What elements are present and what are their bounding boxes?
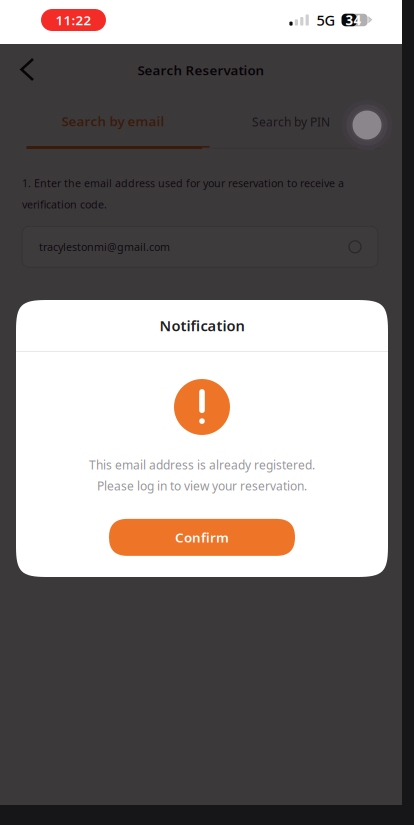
button[interactable]: Back bbox=[0, 44, 52, 96]
staticText: Please log in to view your reservation. bbox=[97, 478, 307, 494]
staticText: tracylestonmi@gmail.com bbox=[39, 240, 170, 254]
staticText: Notification bbox=[159, 316, 244, 335]
staticText: 34 bbox=[346, 11, 362, 29]
staticText: Search by PIN bbox=[252, 114, 330, 130]
staticText: 5G bbox=[317, 10, 336, 30]
button[interactable]: Search by email bbox=[24, 96, 202, 149]
button[interactable]: Search by PIN bbox=[202, 96, 380, 149]
staticText: This email address is already registered… bbox=[89, 457, 315, 473]
staticText: Confirm bbox=[175, 528, 229, 546]
staticText: 11:22 bbox=[55, 11, 91, 29]
staticText: 1. Enter the email address used for your… bbox=[22, 176, 344, 211]
button[interactable]: Confirm bbox=[109, 519, 295, 556]
staticText: Search Reservation bbox=[137, 61, 264, 79]
button[interactable]: AssistiveTouch bbox=[342, 100, 392, 150]
staticText: Search by email bbox=[61, 112, 164, 130]
